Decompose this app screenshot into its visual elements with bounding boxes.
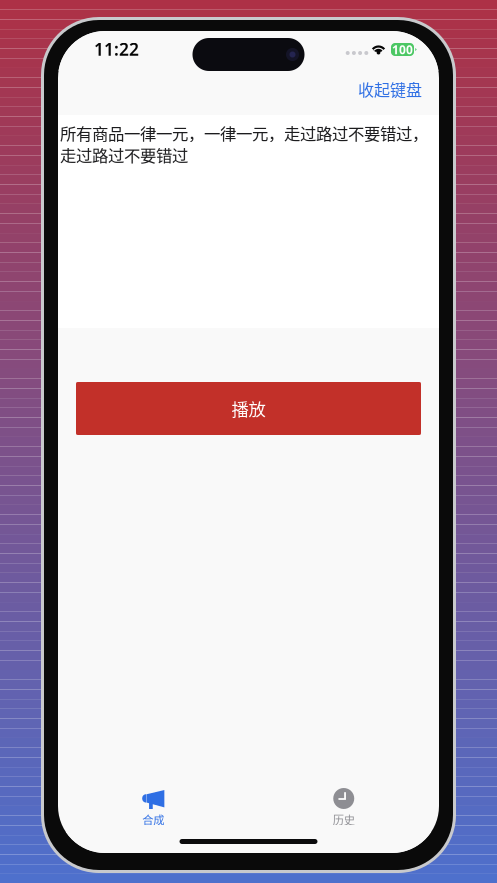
button[interactable]: 收起键盘 [349, 76, 431, 110]
button[interactable]: 合成 [58, 783, 248, 832]
button[interactable]: 播放 [76, 382, 421, 435]
staticText: 历史 [333, 811, 355, 828]
staticText: 11:22 [94, 37, 139, 60]
staticText: 所有商品一律一元，一律一元，走过路过不要错过，走过路过不要错过 [60, 121, 428, 166]
staticText: 合成 [142, 811, 164, 828]
staticText: 收起键盘 [358, 77, 422, 101]
staticText: 100 [392, 41, 413, 57]
staticText: 播放 [231, 396, 265, 421]
button[interactable]: 历史 [248, 783, 439, 832]
